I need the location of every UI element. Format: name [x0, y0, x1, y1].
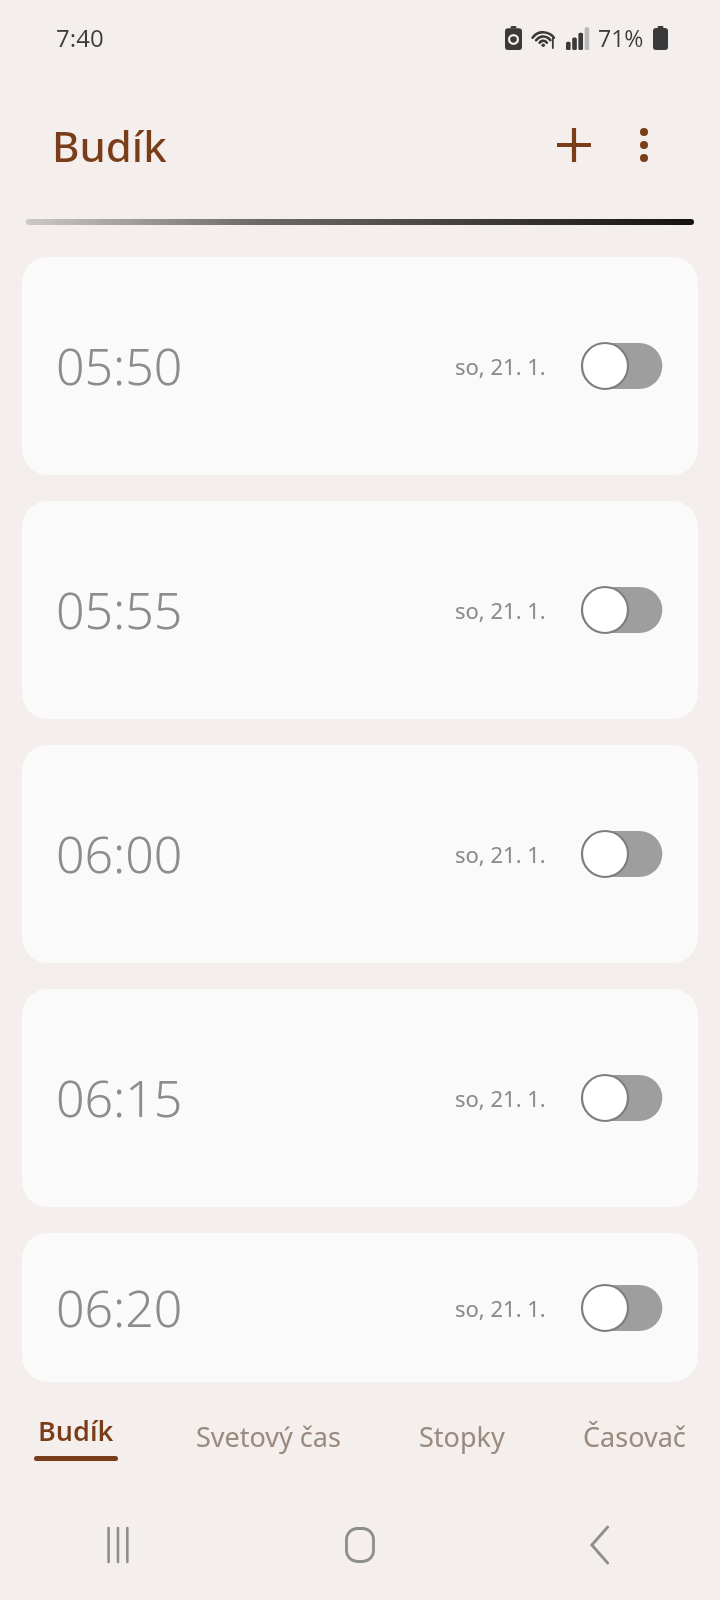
button[interactable]: Stopky — [409, 1410, 515, 1463]
staticText: Budík — [38, 1412, 114, 1449]
button[interactable]: Recent apps — [0, 1490, 240, 1600]
staticText: 05:55 — [56, 576, 183, 644]
button[interactable]: 05:50 — [22, 257, 698, 475]
button[interactable]: Toggle alarm — [582, 585, 664, 635]
button[interactable]: Budík — [24, 1404, 128, 1469]
staticText: 05:50 — [56, 332, 183, 400]
staticText: Stopky — [419, 1418, 505, 1455]
staticText: so, 21. 1. — [455, 351, 546, 381]
button[interactable]: Toggle alarm — [582, 829, 664, 879]
staticText: 71% — [598, 22, 644, 53]
button[interactable]: Svetový čas — [186, 1410, 351, 1463]
button[interactable]: 06:20 — [22, 1233, 698, 1382]
staticText: Budík — [52, 117, 167, 174]
staticText: 06:20 — [56, 1274, 183, 1342]
button[interactable]: 05:55 — [22, 501, 698, 719]
button[interactable]: Toggle alarm — [582, 1073, 664, 1123]
button[interactable]: More options — [612, 113, 676, 177]
button[interactable]: Add alarm — [542, 113, 606, 177]
staticText: Svetový čas — [196, 1418, 341, 1455]
button[interactable]: Časovač — [573, 1410, 696, 1463]
button[interactable]: Toggle alarm — [582, 341, 664, 391]
button[interactable]: Home — [240, 1490, 480, 1600]
button[interactable]: 06:00 — [22, 745, 698, 963]
button[interactable]: 06:15 — [22, 989, 698, 1207]
button[interactable]: Toggle alarm — [582, 1283, 664, 1333]
staticText: so, 21. 1. — [455, 1083, 546, 1113]
staticText: Časovač — [583, 1418, 686, 1455]
button[interactable]: Back — [480, 1490, 720, 1600]
staticText: so, 21. 1. — [455, 1293, 546, 1323]
staticText: 7:40 — [56, 21, 104, 54]
staticText: 06:15 — [56, 1064, 183, 1132]
staticText: 06:00 — [56, 820, 183, 888]
staticText: so, 21. 1. — [455, 595, 546, 625]
staticText: so, 21. 1. — [455, 839, 546, 869]
